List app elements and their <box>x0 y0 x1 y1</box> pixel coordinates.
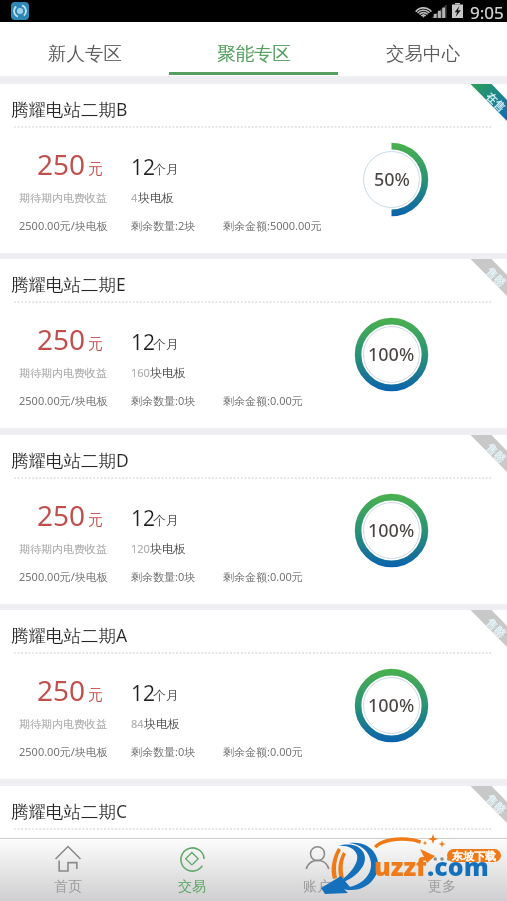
staticText: 84 <box>131 716 144 731</box>
staticText: 100% <box>368 869 415 894</box>
staticText: 账户 <box>303 878 331 896</box>
staticText: 腾耀电站二期A <box>11 623 128 647</box>
staticText: 剩余金额:0.00元 <box>223 569 303 584</box>
button[interactable]: 新人专区 <box>0 22 169 76</box>
staticText: 剩余数量:0块 <box>131 744 196 759</box>
staticText: 售罄 <box>483 440 507 466</box>
staticText: 12 <box>131 679 156 708</box>
staticText: 剩余数量:0块 <box>131 393 196 408</box>
button[interactable]: 聚能专区 <box>169 22 338 76</box>
staticText: 个月 <box>153 687 179 703</box>
button[interactable]: 交易中心 <box>338 22 507 76</box>
staticText: 腾耀电站二期B <box>11 97 128 121</box>
staticText: 2500.00元/块电板 <box>19 569 108 584</box>
staticText: 期待期内电费收益 <box>19 191 107 205</box>
button[interactable]: 首页 <box>6 838 130 901</box>
staticText: 4 <box>131 190 138 205</box>
other: 账户 <box>305 847 330 872</box>
staticText: 售罄 <box>483 791 507 817</box>
button[interactable]: 账户 <box>254 838 379 901</box>
staticText: 250 <box>37 847 86 885</box>
staticText: 2500.00元/块电板 <box>19 393 108 408</box>
staticText: 50% <box>374 167 410 192</box>
staticText: 期待期内电费收益 <box>19 717 107 731</box>
staticText: 售罄 <box>483 264 507 290</box>
staticText: 期待期内电费收益 <box>19 366 107 380</box>
staticText: 2500.00元/块电板 <box>19 218 108 233</box>
staticText: 聚能专区 <box>217 42 291 65</box>
other: 交易 <box>180 847 205 872</box>
staticText: 120 <box>131 541 150 556</box>
staticText: 100% <box>368 693 415 718</box>
staticText: 250 <box>37 145 86 183</box>
staticText: 12 <box>131 328 156 357</box>
staticText: 个月 <box>153 512 179 528</box>
button[interactable]: 更多 <box>379 838 504 901</box>
staticText: 剩余数量:2块 <box>131 218 196 233</box>
staticText: 9:05 <box>470 1 504 23</box>
other: 首页 <box>55 846 81 872</box>
staticText: 期待期内电费收益 <box>19 542 107 556</box>
staticText: 250 <box>37 320 86 358</box>
staticText: 250 <box>37 496 86 534</box>
staticText: 在售 <box>483 89 507 115</box>
button[interactable]: 腾耀电站二期C <box>0 786 507 901</box>
staticText: 100% <box>368 518 415 543</box>
staticText: 2500.00元/块电板 <box>19 744 108 759</box>
staticText: 块电板 <box>144 892 180 901</box>
staticText: 交易 <box>178 878 206 896</box>
staticText: 160 <box>131 365 150 380</box>
button[interactable]: 腾耀电站二期D <box>0 435 507 604</box>
staticText: 剩余数量:0块 <box>131 569 196 584</box>
button[interactable]: 腾耀电站二期A <box>0 610 507 779</box>
staticText: 100% <box>368 342 415 367</box>
other: 更多 <box>430 847 454 871</box>
staticText: 个月 <box>153 336 179 352</box>
button[interactable]: 腾耀电站二期E <box>0 259 507 428</box>
staticText: 腾耀电站二期C <box>11 799 128 823</box>
staticText: 首页 <box>54 878 82 896</box>
staticText: 新人专区 <box>48 42 122 65</box>
staticText: 个月 <box>153 161 179 177</box>
staticText: 元 <box>88 160 103 179</box>
button[interactable]: 交易 <box>130 838 254 901</box>
staticText: 块电板 <box>150 541 186 556</box>
staticText: 12 <box>131 153 156 182</box>
staticText: 块电板 <box>150 365 186 380</box>
staticText: 售罄 <box>483 615 507 641</box>
staticText: 腾耀电站二期D <box>11 448 129 472</box>
staticText: 腾耀电站二期E <box>11 272 126 296</box>
staticText: .com <box>427 849 489 883</box>
staticText: 东坡下载 <box>452 849 496 862</box>
staticText: 剩余金额:0.00元 <box>223 744 303 759</box>
staticText: 更多 <box>428 878 456 896</box>
staticText: 块电板 <box>138 190 174 205</box>
staticText: 12 <box>131 855 156 884</box>
staticText: 剩余金额:0.00元 <box>223 393 303 408</box>
staticText: 250 <box>37 671 86 709</box>
staticText: 元 <box>88 686 103 705</box>
staticText: 元 <box>88 862 103 881</box>
staticText: 个月 <box>153 863 179 879</box>
staticText: 块电板 <box>144 716 180 731</box>
button[interactable]: 腾耀电站二期B <box>0 84 507 253</box>
staticText: 元 <box>88 335 103 354</box>
staticText: 元 <box>88 511 103 530</box>
staticText: 交易中心 <box>386 42 460 65</box>
staticText: 剩余金额:5000.00元 <box>223 218 322 233</box>
staticText: uzzf <box>374 849 427 883</box>
staticText: 12 <box>131 504 156 533</box>
